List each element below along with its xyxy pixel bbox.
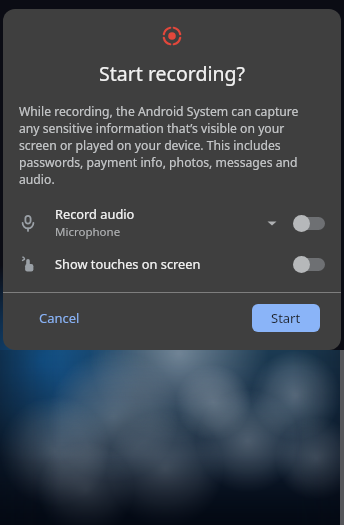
staticText: Show touches on screen — [55, 255, 201, 272]
staticText: Start recording? — [3, 60, 341, 87]
other: Choose audio source — [265, 216, 279, 230]
button[interactable]: Toggle Record audio — [293, 213, 327, 233]
button[interactable]: Start — [252, 304, 320, 332]
staticText: Start — [271, 309, 301, 327]
staticText: Microphone — [55, 224, 121, 240]
staticText: Record audio — [55, 205, 135, 222]
button[interactable]: Toggle Show touches on screen — [293, 254, 327, 274]
button[interactable]: Show touches on screen — [3, 243, 341, 284]
button[interactable]: Cancel — [25, 301, 94, 335]
button[interactable]: Record audio — [3, 202, 341, 243]
staticText: While recording, the Android System can … — [19, 103, 321, 188]
staticText: Cancel — [39, 309, 80, 327]
